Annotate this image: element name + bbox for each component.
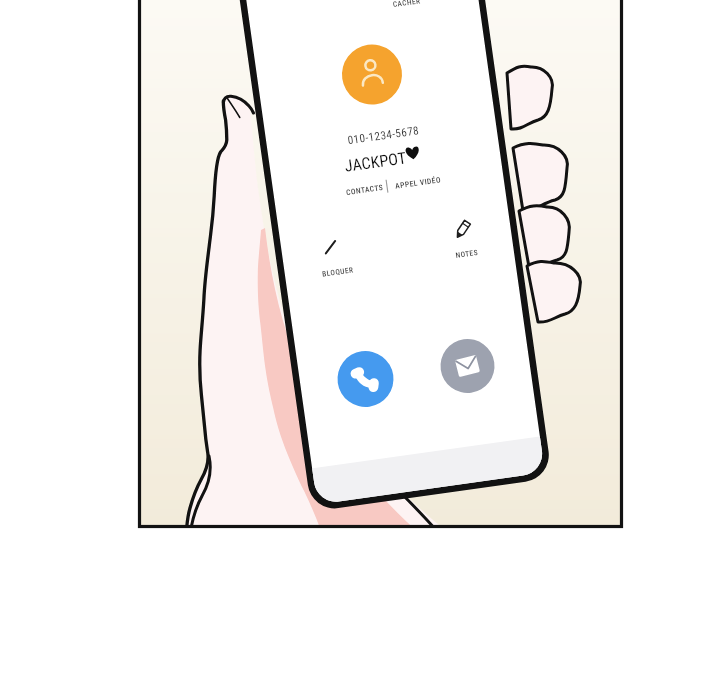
button[interactable]: Comic panel: hand holding a phone showin… bbox=[0, 0, 720, 700]
